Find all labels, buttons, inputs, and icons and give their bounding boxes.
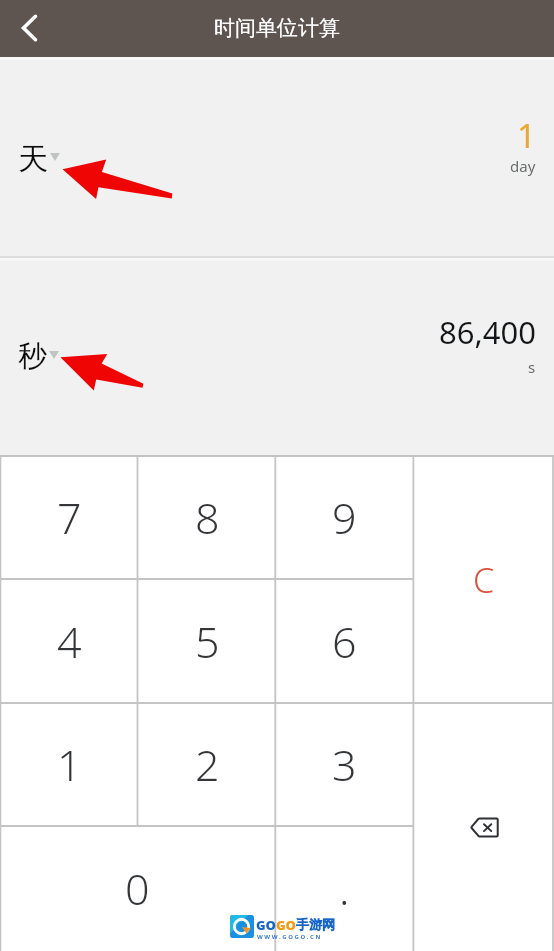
staticText: day xyxy=(510,156,536,176)
button[interactable] xyxy=(0,258,554,456)
staticText: 2 xyxy=(195,735,220,794)
staticText: 9 xyxy=(332,488,357,547)
button[interactable]: 7 xyxy=(0,456,138,579)
staticText: 时间单位计算 xyxy=(214,15,340,41)
button[interactable]: C xyxy=(413,456,554,703)
button[interactable]: 3 xyxy=(275,703,413,826)
button[interactable] xyxy=(0,57,554,257)
staticText: s xyxy=(528,357,536,377)
staticText: W W W . G O G O . C N xyxy=(257,933,321,941)
button[interactable]: Backspace xyxy=(413,703,554,951)
staticText: GO xyxy=(256,916,276,934)
button[interactable]: 8 xyxy=(138,456,276,579)
staticText: 1 xyxy=(57,735,82,794)
button[interactable]: 4 xyxy=(0,579,138,703)
staticText: 3 xyxy=(332,735,357,794)
staticText: 秒 xyxy=(18,338,47,375)
staticText: C xyxy=(473,557,495,603)
staticText: 5 xyxy=(195,612,220,671)
staticText: 天 xyxy=(18,140,48,178)
button[interactable]: Back xyxy=(0,0,56,57)
button[interactable]: 1 xyxy=(0,703,138,826)
staticText: 手游网 xyxy=(296,916,335,932)
staticText: 4 xyxy=(57,612,82,671)
button[interactable]: 0 xyxy=(0,826,275,951)
button[interactable]: 6 xyxy=(275,579,413,703)
staticText: . xyxy=(339,859,350,918)
button[interactable]: 2 xyxy=(138,703,276,826)
staticText: 8 xyxy=(195,488,220,547)
button[interactable]: 9 xyxy=(275,456,413,579)
button[interactable]: 5 xyxy=(138,579,276,703)
staticText: GO xyxy=(276,916,296,934)
staticText: 86,400 xyxy=(439,311,536,353)
staticText: 7 xyxy=(57,488,82,547)
staticText: 1 xyxy=(517,113,536,158)
staticText: 6 xyxy=(332,612,357,671)
staticText: 0 xyxy=(125,859,150,918)
button[interactable]: . xyxy=(275,826,413,951)
